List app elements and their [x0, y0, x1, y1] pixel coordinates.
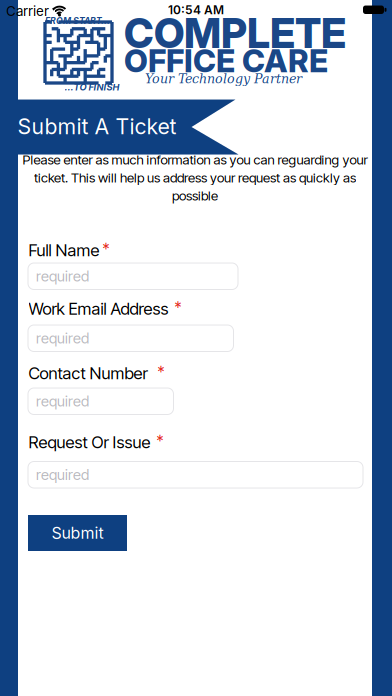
staticText: * [102, 240, 109, 259]
staticText: FROM START... [45, 15, 110, 26]
staticText: * [157, 363, 164, 382]
staticText: Full Name [28, 240, 99, 260]
staticText: Your Technology Partner [145, 72, 302, 86]
staticText: required [36, 329, 89, 347]
button[interactable]: Work Email Address [28, 325, 233, 351]
staticText: * [156, 432, 163, 451]
staticText: Request Or Issue [28, 432, 150, 452]
staticText: 10:54 AM [168, 2, 224, 17]
staticText: ticket. This will help us address your r… [34, 169, 356, 186]
staticText: Work Email Address [28, 298, 168, 319]
staticText: Please enter as much information as you … [22, 151, 367, 168]
staticText: COMPLETE [124, 9, 346, 58]
staticText: OFFICE CARE [124, 42, 328, 80]
staticText: required [36, 466, 89, 484]
staticText: * [174, 298, 181, 317]
button[interactable]: Contact Number [28, 388, 173, 414]
staticText: Submit A Ticket [17, 113, 176, 139]
staticText: Contact Number [28, 363, 147, 383]
staticText: Carrier [6, 3, 49, 19]
staticText: required [36, 267, 89, 285]
button[interactable]: Submit [28, 515, 127, 551]
staticText: possible [172, 187, 218, 204]
button[interactable]: Request Or Issue [28, 461, 363, 488]
staticText: Submit [51, 523, 103, 543]
staticText: required [36, 392, 89, 410]
staticText: ...TO FINISH [64, 81, 119, 93]
button[interactable]: Full Name [28, 263, 238, 289]
